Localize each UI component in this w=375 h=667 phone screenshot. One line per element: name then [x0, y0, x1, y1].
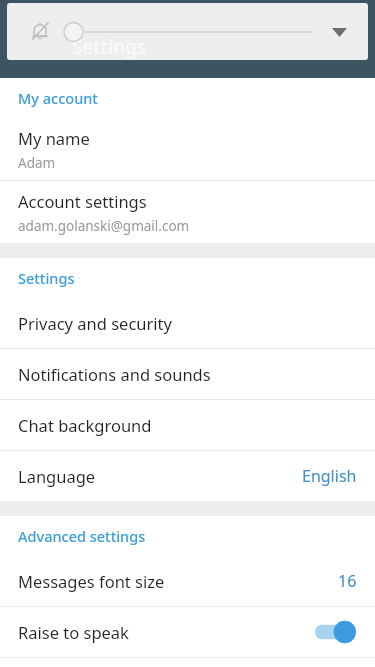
staticText: Settings	[18, 268, 75, 288]
button[interactable]: Volume	[63, 17, 312, 47]
button[interactable]: Notifications and sounds	[0, 349, 375, 399]
staticText: Raise to speak	[18, 621, 311, 643]
staticText: Adam	[18, 154, 56, 172]
staticText: Account settings	[18, 190, 147, 212]
button[interactable]: My name	[0, 118, 375, 180]
staticText: adam.golanski@gmail.com	[18, 217, 190, 235]
staticText: Chat background	[18, 414, 357, 436]
staticText: My name	[18, 127, 90, 149]
staticText: Settings	[72, 34, 146, 60]
staticText: English	[302, 465, 357, 487]
button[interactable]: Language	[0, 451, 375, 501]
button[interactable]: Messages font size	[0, 556, 375, 606]
staticText: Messages font size	[18, 570, 338, 592]
button[interactable]: Expand	[324, 17, 354, 47]
button[interactable]: Privacy and security	[0, 298, 375, 348]
staticText: Advanced settings	[18, 526, 146, 546]
button[interactable]: Chat background	[0, 400, 375, 450]
staticText: Privacy and security	[18, 312, 357, 334]
staticText: 16	[338, 570, 357, 592]
button[interactable]: Notifications muted	[27, 19, 53, 45]
button[interactable]: Raise to speak	[0, 607, 375, 657]
staticText: Notifications and sounds	[18, 363, 357, 385]
button[interactable]: Toggle	[311, 619, 357, 645]
staticText: Language	[18, 465, 302, 487]
button[interactable]: Account settings	[0, 181, 375, 243]
staticText: My account	[18, 88, 98, 108]
